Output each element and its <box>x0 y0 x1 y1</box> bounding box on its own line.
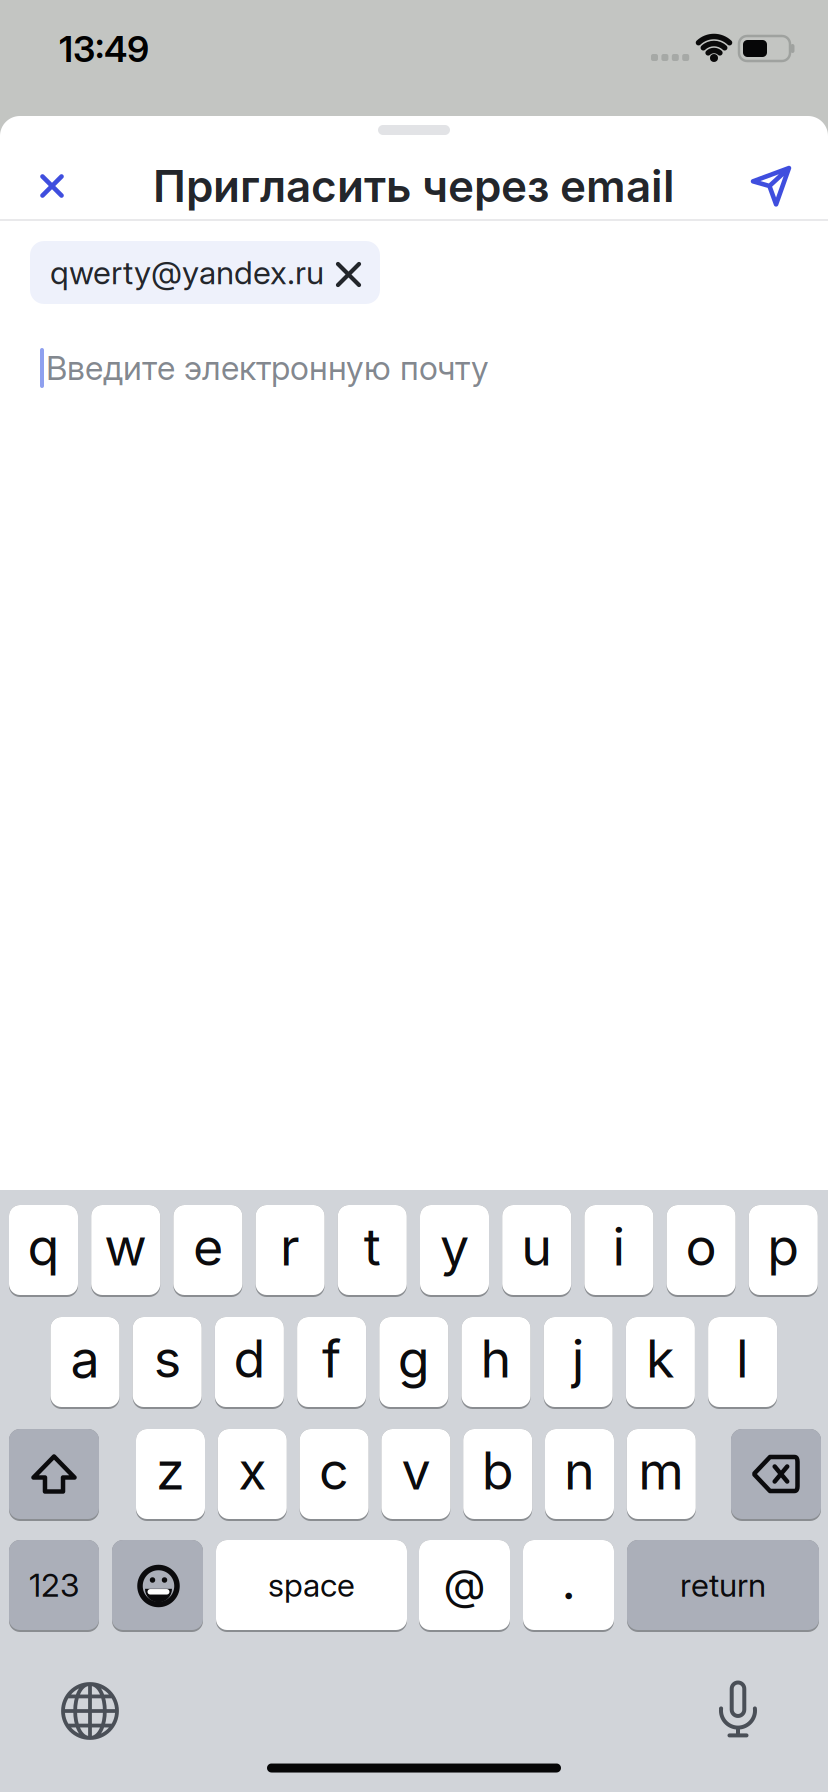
button[interactable]: f <box>297 1317 366 1409</box>
staticText: q <box>27 1215 59 1278</box>
staticText: return <box>680 1566 766 1604</box>
staticText: v <box>401 1439 430 1502</box>
staticText: Пригласить через email <box>153 159 675 213</box>
staticText: qwerty@yandex.ru <box>50 253 324 292</box>
button[interactable]: qwerty@yandex.ru <box>30 241 380 304</box>
button[interactable]: m <box>627 1429 696 1521</box>
button[interactable]: return <box>627 1540 819 1632</box>
button[interactable]: space <box>216 1540 407 1632</box>
button[interactable]: c <box>300 1429 369 1521</box>
button[interactable]: Удалить <box>731 1429 821 1521</box>
staticText: i <box>612 1215 625 1278</box>
staticText: k <box>646 1327 675 1390</box>
staticText: o <box>686 1215 717 1278</box>
button[interactable]: Отправить <box>743 158 799 214</box>
button[interactable]: o <box>667 1205 736 1297</box>
button[interactable]: k <box>626 1317 695 1409</box>
button[interactable]: q <box>9 1205 78 1297</box>
button[interactable]: j <box>544 1317 613 1409</box>
button[interactable]: Диктовка <box>703 1674 773 1744</box>
button[interactable]: a <box>50 1317 119 1409</box>
staticText: w <box>104 1215 147 1278</box>
staticText: t <box>364 1215 381 1278</box>
button[interactable]: Сменить клавиатуру <box>55 1676 125 1746</box>
staticText: l <box>736 1327 749 1390</box>
staticText: s <box>154 1327 181 1390</box>
button[interactable]: @ <box>419 1540 510 1632</box>
button[interactable]: l <box>708 1317 777 1409</box>
staticText: b <box>482 1439 514 1502</box>
button[interactable]: s <box>133 1317 202 1409</box>
button[interactable]: p <box>749 1205 818 1297</box>
staticText: j <box>572 1327 585 1390</box>
button[interactable]: d <box>215 1317 284 1409</box>
button[interactable]: i <box>584 1205 653 1297</box>
staticText: g <box>398 1327 430 1390</box>
staticText: f <box>322 1327 341 1390</box>
staticText: c <box>319 1439 349 1502</box>
button[interactable]: Shift <box>9 1429 99 1521</box>
staticText: 123 <box>29 1566 79 1604</box>
staticText: r <box>280 1215 300 1278</box>
staticText: z <box>156 1439 185 1502</box>
staticText: 13:49 <box>59 27 149 71</box>
staticText: d <box>233 1327 265 1390</box>
button[interactable]: z <box>136 1429 205 1521</box>
button[interactable]: Эмодзи <box>112 1540 203 1632</box>
staticText: Введите электронную почту <box>46 348 489 388</box>
button[interactable]: . <box>523 1540 614 1632</box>
button[interactable]: 123 <box>9 1540 99 1632</box>
staticText: m <box>638 1439 684 1502</box>
button[interactable]: u <box>502 1205 571 1297</box>
button[interactable]: v <box>381 1429 450 1521</box>
button[interactable]: n <box>545 1429 614 1521</box>
button[interactable]: r <box>256 1205 325 1297</box>
staticText: space <box>268 1566 355 1604</box>
staticText: y <box>440 1215 469 1278</box>
button[interactable]: h <box>461 1317 530 1409</box>
staticText: u <box>521 1215 552 1278</box>
button[interactable]: b <box>463 1429 532 1521</box>
button[interactable]: t <box>338 1205 407 1297</box>
button[interactable]: y <box>420 1205 489 1297</box>
staticText: e <box>193 1215 223 1278</box>
staticText: h <box>480 1327 511 1390</box>
button[interactable]: g <box>379 1317 448 1409</box>
staticText: @ <box>444 1560 485 1610</box>
button[interactable]: x <box>218 1429 287 1521</box>
button[interactable]: Закрыть <box>24 158 80 214</box>
button[interactable]: w <box>91 1205 160 1297</box>
staticText: x <box>238 1439 266 1502</box>
button[interactable]: e <box>173 1205 242 1297</box>
staticText: . <box>561 1551 575 1611</box>
staticText: p <box>767 1215 799 1278</box>
staticText: a <box>70 1327 99 1390</box>
staticText: n <box>564 1439 595 1502</box>
